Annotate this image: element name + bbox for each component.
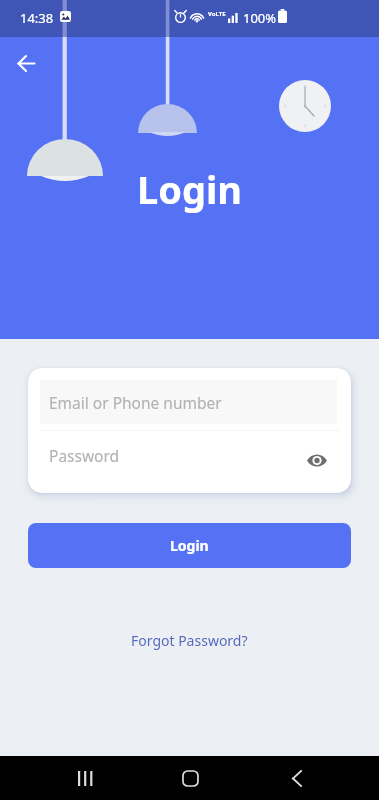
button[interactable]: Back — [280, 756, 314, 800]
button[interactable]: Show password — [302, 445, 332, 475]
staticText: Email or Phone number — [49, 392, 222, 413]
staticText: VoLTE — [208, 10, 226, 18]
staticText: 14:38 — [20, 9, 54, 27]
staticText: Forgot Password? — [131, 631, 248, 650]
staticText: Login — [170, 536, 209, 555]
staticText: Login — [137, 163, 243, 215]
button[interactable]: Back — [10, 47, 43, 80]
button[interactable]: Recents — [68, 756, 102, 800]
button[interactable]: Email or Phone number — [40, 380, 337, 424]
button[interactable]: Password — [40, 431, 332, 479]
button[interactable]: Forgot Password? — [121, 626, 258, 655]
button[interactable]: Login — [28, 523, 351, 568]
button[interactable]: Home — [173, 756, 207, 800]
staticText: 100% — [243, 9, 277, 27]
staticText: Password — [49, 445, 120, 466]
